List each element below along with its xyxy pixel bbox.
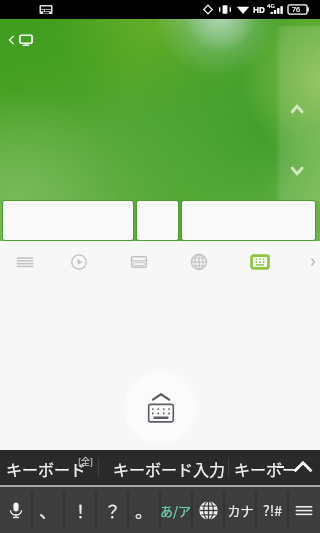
button[interactable]: Window (123, 246, 155, 278)
button[interactable]: Scroll (276, 26, 320, 201)
button[interactable]: キーボード (0, 450, 98, 485)
button[interactable]: 、 (32, 487, 64, 533)
button[interactable]: Text field (137, 201, 178, 240)
button[interactable]: ！ (64, 487, 96, 533)
staticText: 76 (292, 5, 301, 15)
button[interactable]: Back (4, 33, 18, 47)
staticText: キーボー (234, 457, 296, 480)
button[interactable]: Expand candidates (292, 450, 320, 485)
staticText: 。 (135, 497, 153, 523)
button[interactable]: ?!# (256, 487, 288, 533)
staticText: あ/ア (160, 501, 192, 520)
button[interactable]: Language (183, 246, 215, 278)
staticText: 、 (39, 497, 57, 523)
button[interactable]: Cast to display (18, 32, 34, 48)
staticText: [全] (78, 455, 94, 468)
button[interactable]: Play (63, 246, 95, 278)
button[interactable]: Text field (3, 201, 133, 240)
staticText: キーボード (6, 457, 87, 480)
button[interactable]: Voice input (0, 487, 32, 533)
button[interactable]: カナ (224, 487, 256, 533)
button[interactable]: キーボー (229, 450, 291, 485)
staticText: ！ (72, 498, 89, 523)
button[interactable]: Show keyboard (124, 371, 197, 444)
button[interactable]: Keyboard (244, 246, 276, 278)
button[interactable]: List (9, 246, 41, 278)
staticText: ?!# (263, 500, 282, 520)
staticText: カナ (227, 501, 254, 520)
button[interactable]: Text field (182, 201, 315, 240)
button[interactable]: キーボード入力 (99, 450, 228, 485)
button[interactable]: Language (192, 487, 224, 533)
button[interactable]: ？ (96, 487, 128, 533)
button[interactable]: More tools (304, 253, 320, 271)
staticText: HD (253, 4, 265, 15)
button[interactable]: Menu (288, 487, 320, 533)
staticText: 4G (267, 2, 275, 10)
button[interactable]: 。 (128, 487, 160, 533)
button[interactable]: Kana toggle (160, 487, 192, 533)
staticText: ？ (104, 498, 121, 523)
staticText: キーボード入力 (113, 457, 226, 480)
